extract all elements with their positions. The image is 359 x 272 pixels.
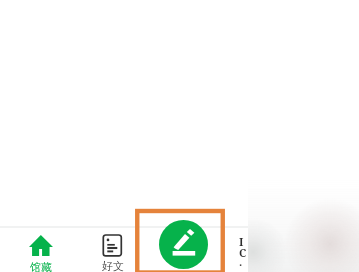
- button[interactable]: Write: [159, 220, 208, 269]
- staticText: 馆藏: [30, 260, 52, 272]
- button[interactable]: 馆藏: [5, 227, 76, 272]
- button[interactable]: 好文: [77, 227, 148, 272]
- staticText: I C ·: [239, 234, 247, 272]
- staticText: 好文: [102, 259, 124, 272]
